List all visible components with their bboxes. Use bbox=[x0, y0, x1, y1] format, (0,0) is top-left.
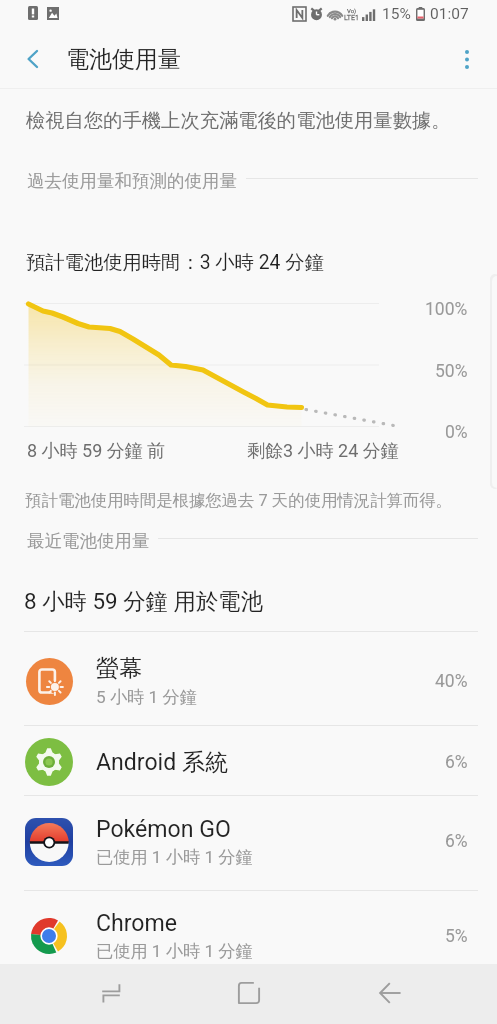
button[interactable]: Back bbox=[331, 964, 497, 1024]
staticText: Pokémon GO bbox=[96, 816, 231, 843]
button[interactable]: More options bbox=[445, 37, 489, 81]
button[interactable]: Recents bbox=[0, 964, 165, 1024]
staticText: 最近電池使用量 bbox=[27, 530, 150, 552]
staticText: Android 系統 bbox=[96, 748, 229, 777]
staticText: 50% bbox=[435, 361, 468, 382]
staticText: 預計電池使用時間是根據您過去 7 天的使用情況計算而得。 bbox=[25, 490, 453, 511]
staticText: Chrome bbox=[96, 910, 178, 937]
staticText: 過去使用量和預測的使用量 bbox=[27, 170, 237, 192]
button[interactable]: Chrome bbox=[0, 890, 497, 982]
staticText: 15% bbox=[382, 5, 411, 23]
staticText: 已使用 1 小時 1 分鐘 bbox=[96, 846, 253, 868]
staticText: 5% bbox=[445, 926, 468, 947]
button[interactable]: Pokémon GO bbox=[0, 795, 497, 890]
button[interactable]: Android 系統 bbox=[0, 725, 497, 795]
staticText: 剩餘3 小時 24 分鐘 bbox=[247, 440, 399, 463]
staticText: 40% bbox=[435, 671, 468, 692]
button[interactable]: Home bbox=[165, 964, 331, 1024]
staticText: 電池使用量 bbox=[66, 45, 181, 74]
staticText: 6% bbox=[445, 831, 468, 852]
staticText: 6% bbox=[445, 752, 468, 773]
staticText: 0% bbox=[445, 422, 468, 443]
staticText: 8 小時 59 分鐘 用於電池 bbox=[24, 587, 264, 615]
staticText: LTE1 bbox=[344, 14, 359, 22]
staticText: 預計電池使用時間：3 小時 24 分鐘 bbox=[26, 250, 324, 274]
button[interactable]: Back bbox=[9, 35, 57, 83]
staticText: 8 小時 59 分鐘 前 bbox=[27, 440, 166, 463]
button[interactable]: 螢幕 bbox=[0, 631, 497, 725]
staticText: Vo) bbox=[347, 7, 357, 14]
staticText: 已使用 1 小時 1 分鐘 bbox=[96, 940, 253, 962]
staticText: 5 小時 1 分鐘 bbox=[96, 686, 197, 708]
staticText: 01:07 bbox=[430, 5, 469, 23]
staticText: 100% bbox=[425, 299, 468, 320]
staticText: 檢視自您的手機上次充滿電後的電池使用量數據。 bbox=[26, 108, 451, 132]
staticText: 螢幕 bbox=[96, 654, 143, 683]
